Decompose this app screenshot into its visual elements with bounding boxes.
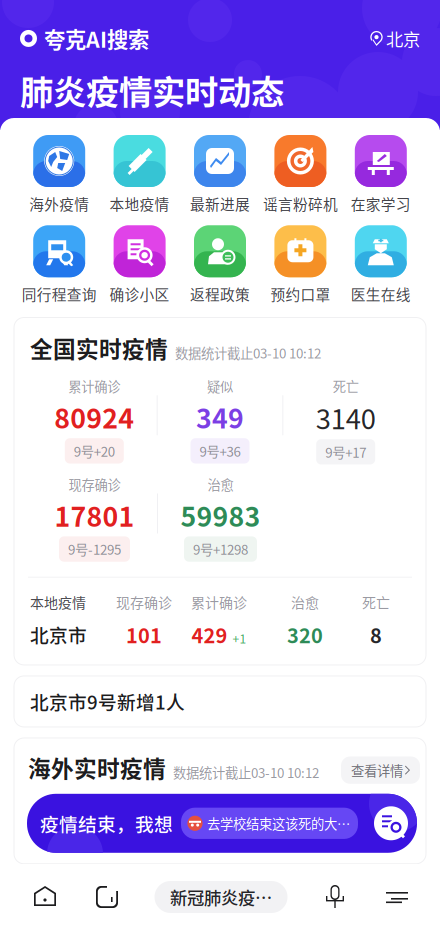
- staticText: 北京市9号新增1人: [30, 688, 185, 715]
- staticText: +1: [232, 630, 246, 647]
- button[interactable]: 医生在线: [341, 225, 421, 304]
- staticText: 9号+17: [325, 442, 366, 461]
- staticText: 疫情结束，我想: [40, 810, 173, 837]
- button[interactable]: 主页: [14, 864, 76, 930]
- button[interactable]: 查看详情: [341, 756, 420, 784]
- staticText: 现存确诊: [116, 592, 172, 612]
- staticText: 夸克AI搜索: [44, 23, 149, 54]
- staticText: 59983: [180, 496, 260, 534]
- staticText: 9号+1298: [193, 539, 248, 559]
- staticText: 3140: [316, 398, 376, 437]
- button[interactable]: 标签页: [76, 864, 138, 930]
- button[interactable]: 谣言粉碎机: [260, 135, 341, 214]
- button[interactable]: 返程政策: [180, 225, 260, 304]
- button[interactable]: 新冠肺炎疫…: [154, 881, 287, 913]
- button[interactable]: 本地疫情: [99, 135, 180, 214]
- staticText: 治愈: [291, 592, 319, 612]
- staticText: 现存确诊: [68, 474, 120, 494]
- staticText: 死亡: [333, 376, 359, 396]
- staticText: 本地疫情: [30, 592, 86, 612]
- staticText: 累计确诊: [68, 376, 120, 396]
- staticText: 确诊小区: [110, 283, 170, 304]
- staticText: 累计确诊: [191, 592, 247, 612]
- staticText: 在家学习: [351, 193, 411, 214]
- staticText: 9号-1295: [68, 539, 121, 559]
- button[interactable]: 北京市9号新增1人: [0, 665, 440, 727]
- staticText: 返程政策: [190, 283, 250, 304]
- staticText: 349: [196, 398, 244, 436]
- staticText: 新冠肺炎疫…: [170, 884, 272, 910]
- staticText: 数据统计截止03-10 10:12: [175, 343, 321, 362]
- button[interactable]: 最新进展: [180, 135, 260, 214]
- staticText: 查看详情: [351, 760, 403, 780]
- staticText: 101: [126, 620, 162, 649]
- staticText: 海外疫情: [29, 193, 89, 214]
- staticText: 429: [191, 620, 227, 649]
- staticText: 320: [287, 620, 323, 649]
- staticText: 北京市: [30, 621, 87, 648]
- button[interactable]: 语音搜索: [304, 864, 366, 930]
- button[interactable]: 菜单: [366, 864, 428, 930]
- staticText: 肺炎疫情实时动态: [20, 66, 284, 114]
- staticText: 数据统计截止03-10 10:12: [173, 762, 319, 782]
- staticText: 治愈: [207, 474, 233, 494]
- staticText: 医生在线: [351, 283, 411, 304]
- staticText: 本地疫情: [110, 193, 170, 214]
- staticText: 预约口罩: [270, 283, 330, 304]
- staticText: 同行程查询: [22, 283, 97, 304]
- button[interactable]: 疫情结束，我想: [27, 794, 417, 853]
- staticText: 海外实时疫情: [28, 751, 166, 784]
- staticText: 17801: [54, 496, 134, 534]
- button[interactable]: 海外疫情: [19, 135, 99, 214]
- staticText: 全国实时疫情: [30, 331, 168, 364]
- staticText: 疑似: [207, 376, 233, 396]
- staticText: 最新进展: [190, 193, 250, 214]
- staticText: 80924: [54, 398, 134, 436]
- staticText: 8: [370, 620, 382, 649]
- staticText: 9号+36: [199, 441, 240, 460]
- staticText: 谣言粉碎机: [263, 193, 338, 214]
- staticText: 北京: [386, 26, 420, 51]
- staticText: 去学校结束这该死的大…: [207, 814, 350, 833]
- button[interactable]: 预约口罩: [260, 225, 341, 304]
- staticText: 9号+20: [74, 441, 115, 460]
- button[interactable]: 确诊小区: [99, 225, 180, 304]
- staticText: 死亡: [362, 592, 390, 612]
- button[interactable]: 在家学习: [341, 135, 421, 214]
- button[interactable]: 同行程查询: [19, 225, 99, 304]
